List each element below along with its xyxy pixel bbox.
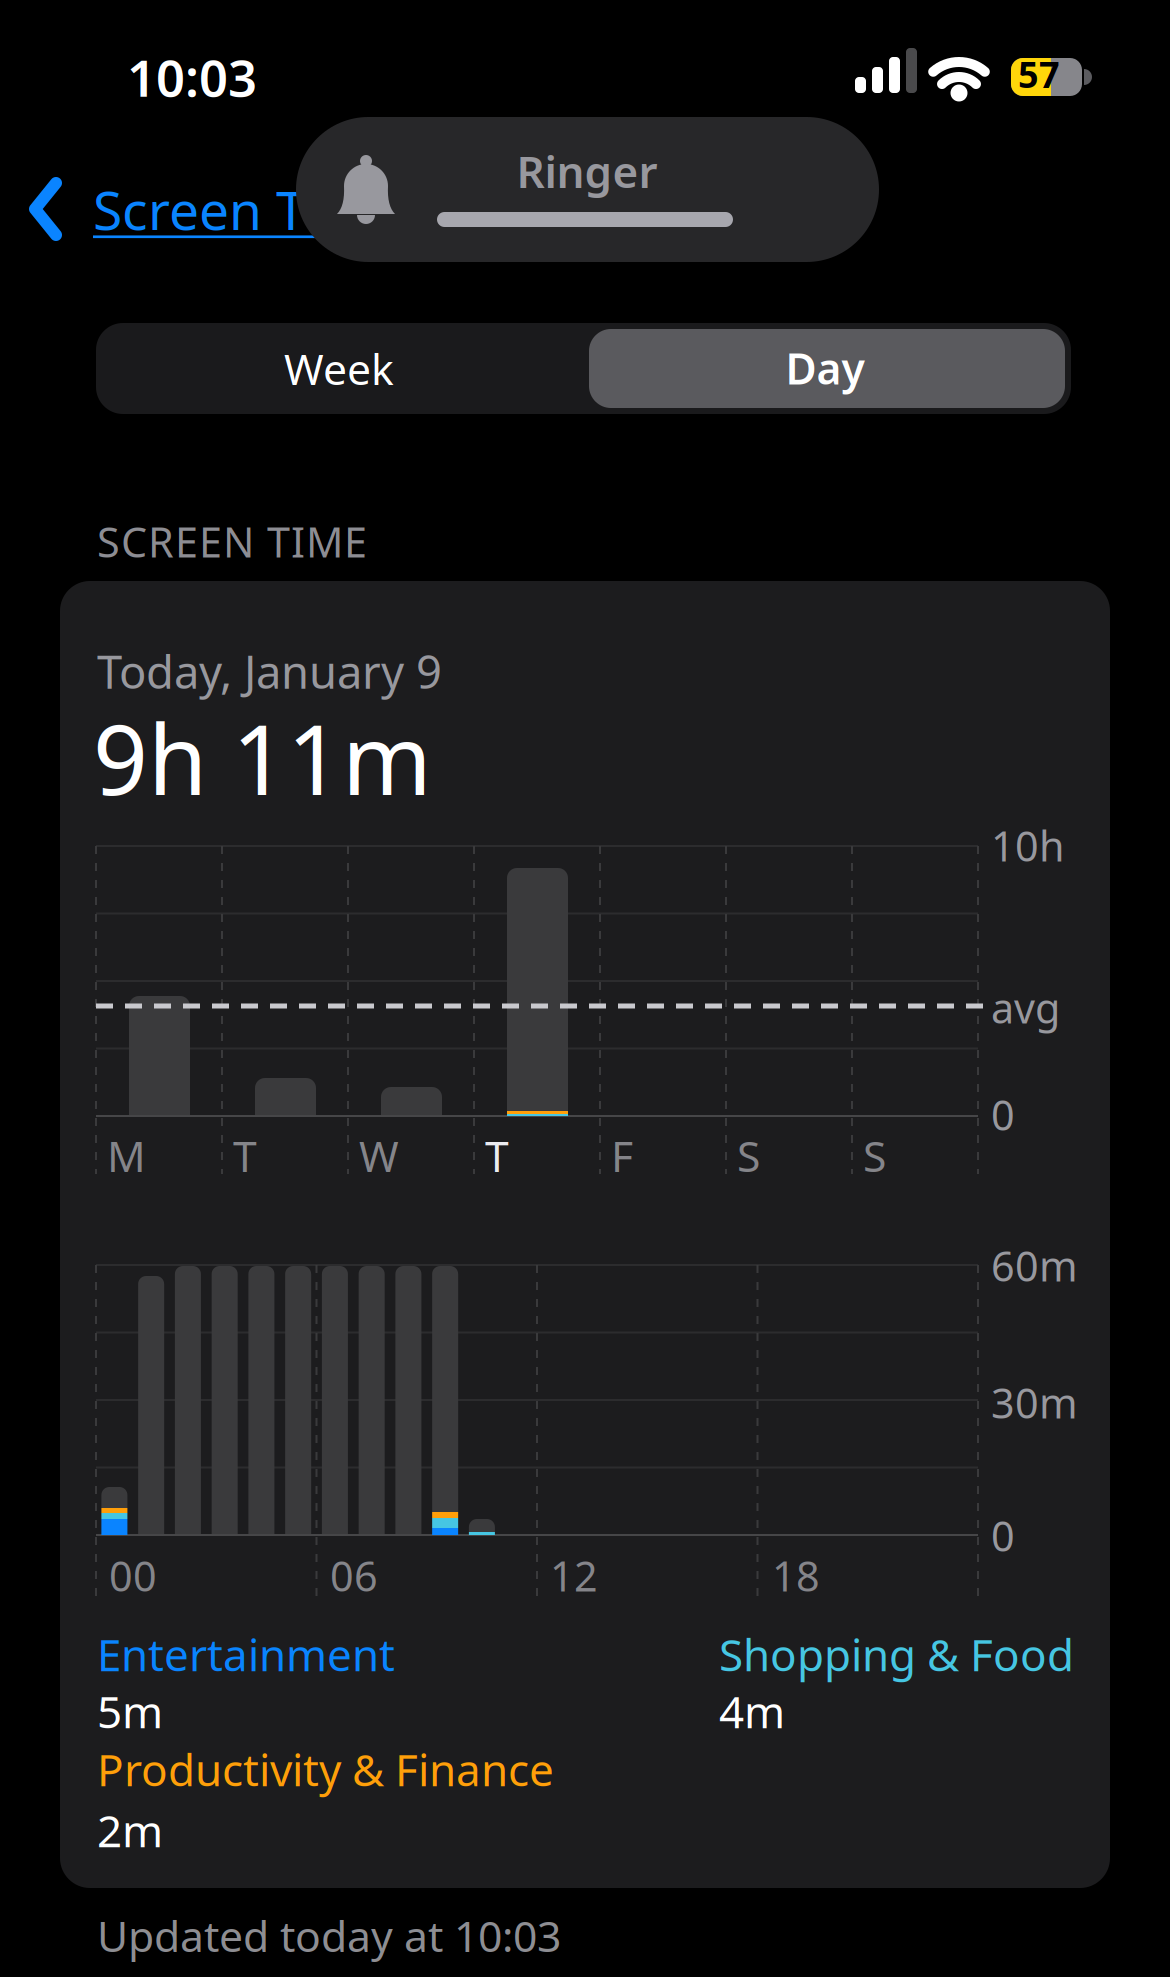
staticText: M — [107, 1127, 146, 1184]
staticText: Screen Time — [93, 174, 400, 245]
staticText: 30m — [991, 1375, 1078, 1430]
staticText: SCREEN TIME — [97, 514, 367, 569]
button[interactable]: Back — [0, 0, 1170, 1977]
staticText: Week — [284, 340, 394, 397]
staticText: Shopping & Food — [719, 1625, 1074, 1683]
staticText: F — [611, 1127, 633, 1184]
staticText: Entertainment — [97, 1625, 395, 1683]
staticText: 9h 11m — [93, 694, 432, 821]
staticText: 18 — [772, 1548, 820, 1603]
staticText: 0 — [991, 1087, 1015, 1142]
staticText: 12 — [550, 1548, 598, 1603]
staticText: Productivity & Finance — [97, 1740, 554, 1798]
staticText: 0 — [991, 1508, 1015, 1563]
staticText: W — [359, 1127, 399, 1184]
staticText: T — [485, 1127, 509, 1184]
staticText: 00 — [109, 1548, 157, 1603]
staticText: 10h — [991, 818, 1065, 873]
staticText: Today, January 9 — [97, 641, 442, 701]
staticText: S — [737, 1127, 760, 1184]
button[interactable]: Day — [0, 0, 1170, 1977]
staticText: avg — [991, 980, 1060, 1035]
staticText: Ringer — [516, 142, 657, 200]
staticText: Updated today at 10:03 — [97, 1907, 561, 1964]
staticText: 60m — [991, 1238, 1078, 1293]
staticText: 10:03 — [127, 43, 257, 111]
staticText: 2m — [97, 1801, 163, 1859]
staticText: 5m — [97, 1682, 163, 1740]
staticText: T — [233, 1127, 257, 1184]
staticText: 57 — [1018, 50, 1060, 98]
staticText: S — [863, 1127, 886, 1184]
button[interactable]: Week — [0, 0, 480, 91]
staticText: Day — [785, 340, 864, 396]
staticText: 06 — [330, 1548, 378, 1603]
staticText: 4m — [719, 1682, 785, 1740]
